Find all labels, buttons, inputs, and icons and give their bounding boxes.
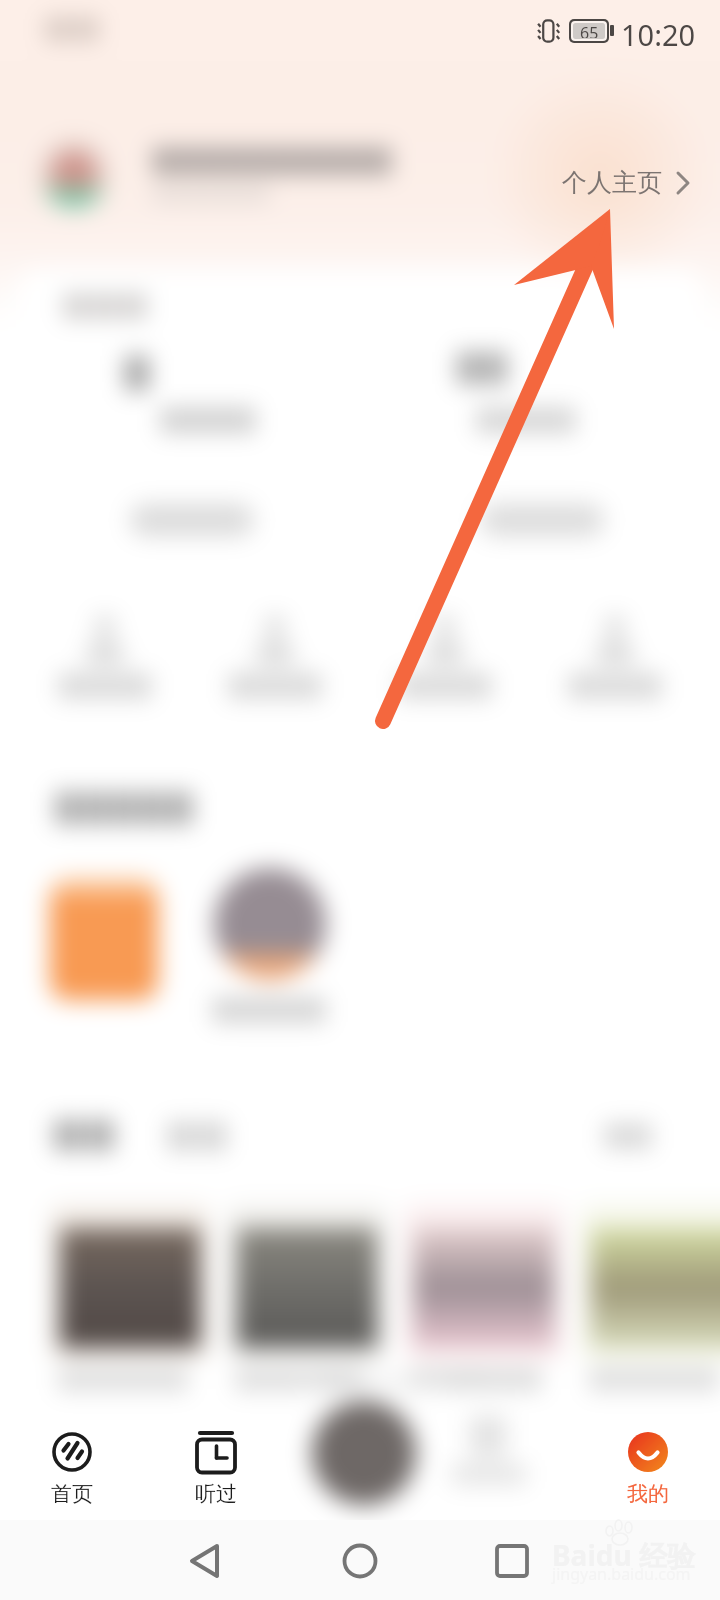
staticText: Baidu 经验 (552, 1536, 695, 1574)
other: 听过 (194, 1430, 238, 1474)
button[interactable]: 个人主页 (562, 167, 691, 198)
staticText: 个人主页 (562, 167, 662, 198)
button[interactable]: 我的 (600, 1392, 696, 1520)
staticText: 10:20 (621, 15, 696, 54)
button[interactable]: Recents (464, 1520, 560, 1600)
button[interactable]: Home (312, 1520, 408, 1600)
button[interactable]: 首页 (24, 1392, 120, 1520)
staticText: 首页 (51, 1481, 93, 1507)
staticText: 我的 (627, 1481, 669, 1507)
button[interactable]: Back (157, 1520, 253, 1600)
staticText: 65 (580, 23, 599, 38)
staticText: 听过 (195, 1481, 237, 1507)
other: 我的 (626, 1430, 670, 1474)
button[interactable]: 听过 (168, 1392, 264, 1520)
other: 首页 (50, 1430, 94, 1474)
